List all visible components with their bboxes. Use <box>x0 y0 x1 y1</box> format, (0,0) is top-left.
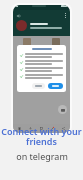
button[interactable]: Add <box>58 105 67 114</box>
button[interactable]: Back <box>15 12 22 19</box>
button[interactable]: Edit <box>49 125 56 132</box>
button[interactable] <box>17 38 36 51</box>
button[interactable]: Share <box>60 125 67 132</box>
button[interactable]: Download <box>27 125 34 132</box>
staticText: on telegram <box>16 150 68 162</box>
button[interactable] <box>46 38 66 51</box>
button[interactable]: More options <box>62 12 69 19</box>
button[interactable] <box>48 83 63 89</box>
button[interactable]: Delete <box>16 125 23 132</box>
button[interactable]: Copy <box>38 125 45 132</box>
button[interactable] <box>32 83 45 89</box>
staticText: Connect with your friends <box>1 125 82 148</box>
